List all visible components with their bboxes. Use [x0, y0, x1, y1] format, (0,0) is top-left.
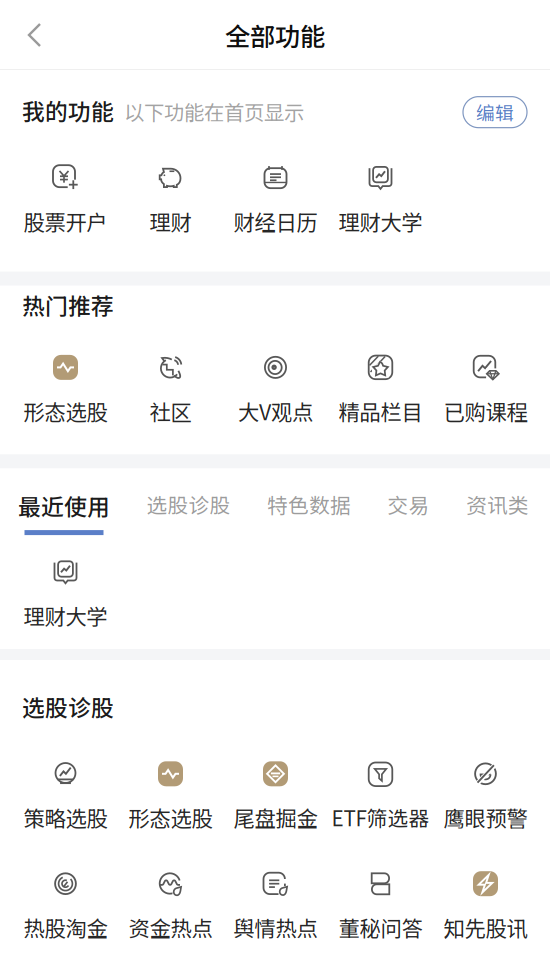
staticText: 全部功能 — [225, 17, 325, 53]
staticText: 财经日历 — [233, 206, 317, 237]
staticText: 策略选股 — [23, 802, 107, 833]
button[interactable]: 鹰眼预警 — [433, 759, 538, 833]
staticText: 选股诊股 — [22, 690, 114, 723]
button[interactable]: ETF筛选器 — [328, 759, 433, 832]
button[interactable]: 理财大学 — [328, 163, 433, 237]
button[interactable]: 已购课程 — [433, 352, 538, 426]
staticText: 股票开户 — [23, 206, 107, 237]
staticText: 最近使用 — [18, 489, 110, 522]
staticText: 以下功能在首页显示 — [114, 97, 304, 126]
staticText: 我的功能 — [22, 94, 114, 127]
staticText: 大V观点 — [238, 395, 313, 426]
staticText: 特色数据 — [267, 489, 351, 519]
button[interactable]: 编辑 — [463, 97, 527, 128]
button[interactable]: 董秘问答 — [328, 869, 433, 943]
staticText: ETF筛选器 — [331, 802, 429, 832]
staticText: 董秘问答 — [338, 912, 422, 943]
staticText: 理财大学 — [338, 206, 422, 237]
staticText: 理财大学 — [23, 600, 107, 631]
button[interactable]: 形态选股 — [118, 759, 223, 833]
staticText: 形态选股 — [128, 802, 212, 833]
button[interactable]: 资金热点 — [118, 869, 223, 943]
button[interactable]: 财经日历 — [223, 163, 328, 237]
staticText: 形态选股 — [23, 395, 107, 426]
staticText: 知先股讯 — [443, 912, 527, 943]
staticText: 选股诊股 — [146, 489, 230, 519]
button[interactable]: 返回 — [0, 7, 70, 63]
staticText: 舆情热点 — [233, 912, 317, 943]
staticText: 资金热点 — [128, 912, 212, 943]
button[interactable]: 知先股讯 — [433, 869, 538, 943]
button[interactable]: 股票开户 — [13, 163, 118, 237]
staticText: 尾盘掘金 — [233, 802, 317, 833]
button[interactable]: 交易 — [387, 489, 429, 519]
button[interactable]: 特色数据 — [267, 489, 351, 519]
button[interactable]: 社区 — [118, 352, 223, 426]
button[interactable]: 策略选股 — [13, 759, 118, 833]
staticText: 社区 — [149, 395, 191, 426]
button[interactable]: 大V观点 — [223, 352, 328, 426]
button[interactable]: 尾盘掘金 — [223, 759, 328, 833]
staticText: 理财 — [149, 206, 191, 237]
button[interactable]: 选股诊股 — [146, 489, 230, 519]
button[interactable]: 理财 — [118, 163, 223, 237]
button[interactable]: 舆情热点 — [223, 869, 328, 943]
staticText: 已购课程 — [443, 395, 527, 426]
staticText: 热股淘金 — [23, 912, 107, 943]
button[interactable]: 资讯类 — [466, 489, 529, 519]
button[interactable]: 形态选股 — [13, 352, 118, 426]
staticText: 热门推荐 — [22, 289, 114, 321]
button[interactable]: 精品栏目 — [328, 352, 433, 426]
staticText: 交易 — [387, 489, 429, 519]
button[interactable]: 理财大学 — [13, 557, 118, 631]
button[interactable]: 最近使用 — [18, 489, 110, 535]
button[interactable]: 热股淘金 — [13, 869, 118, 943]
staticText: 资讯类 — [466, 489, 529, 519]
staticText: 编辑 — [476, 99, 514, 126]
staticText: 鹰眼预警 — [443, 802, 527, 833]
staticText: 精品栏目 — [338, 395, 422, 426]
